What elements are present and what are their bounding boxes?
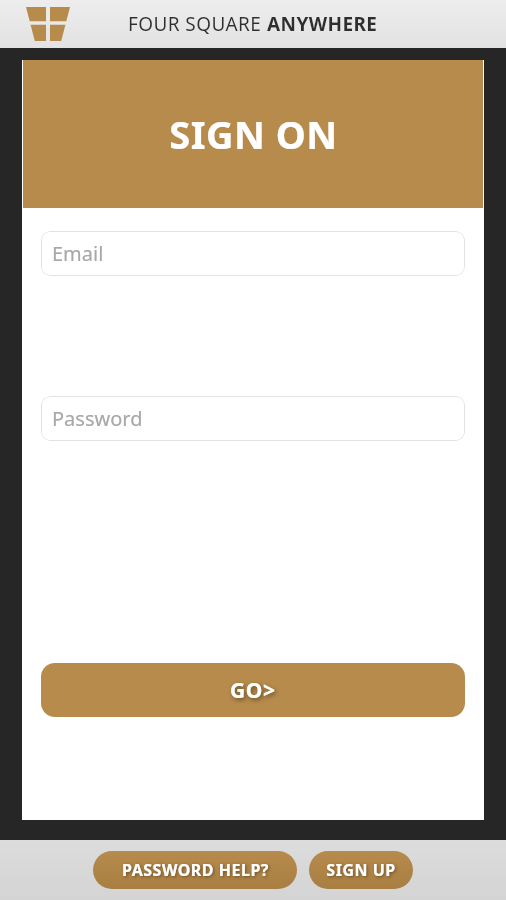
button[interactable]: Password xyxy=(41,396,465,441)
staticText: Email xyxy=(52,240,104,267)
button[interactable]: GO> xyxy=(41,663,465,717)
button[interactable]: SIGN UP xyxy=(309,851,413,889)
staticText: GO> xyxy=(230,676,276,705)
staticText: ANYWHERE xyxy=(267,11,378,37)
button[interactable]: Email xyxy=(41,231,465,276)
staticText: SIGN UP xyxy=(326,859,396,881)
staticText: Password xyxy=(52,405,143,432)
staticText: SIGN ON xyxy=(169,108,338,160)
staticText: FOUR SQUARE xyxy=(128,11,267,37)
button[interactable]: Four Square Anywhere home xyxy=(26,7,70,41)
staticText: PASSWORD HELP? xyxy=(122,859,269,881)
button[interactable]: PASSWORD HELP? xyxy=(93,851,297,889)
